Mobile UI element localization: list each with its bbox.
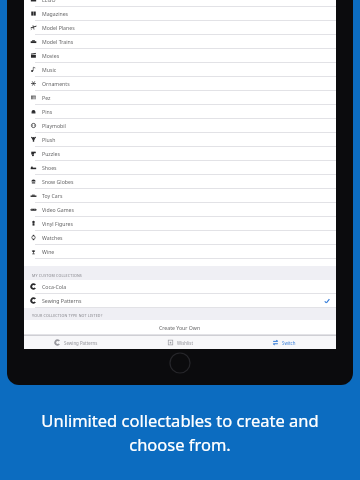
staticText: Plush: [42, 136, 56, 143]
staticText: Sewing Patterns: [42, 297, 82, 304]
staticText: Watches: [42, 234, 63, 241]
button[interactable]: Ornaments: [24, 77, 336, 91]
button[interactable]: Wishlist: [128, 336, 232, 349]
button[interactable]: Music: [24, 63, 336, 77]
staticText: Coca-Cola: [42, 283, 67, 290]
button[interactable]: Snow Globes: [24, 175, 336, 189]
button[interactable]: Toy Cars: [24, 189, 336, 203]
button[interactable]: Home: [169, 352, 191, 374]
staticText: Unlimited collectables to create and cho…: [41, 409, 319, 456]
staticText: Shoes: [42, 164, 57, 171]
staticText: Model Planes: [42, 24, 75, 31]
staticText: Video Games: [42, 206, 75, 213]
button[interactable]: Coca-Cola: [24, 280, 336, 294]
button[interactable]: Plush: [24, 133, 336, 147]
button[interactable]: Model Trains: [24, 35, 336, 49]
staticText: Wine: [42, 248, 55, 255]
staticText: Ornaments: [42, 80, 70, 87]
button[interactable]: Video Games: [24, 203, 336, 217]
button[interactable]: Playmobil: [24, 119, 336, 133]
staticText: Sewing Patterns: [64, 340, 98, 346]
staticText: LEGO: [42, 0, 56, 3]
button[interactable]: Shoes: [24, 161, 336, 175]
button[interactable]: Magazines: [24, 7, 336, 21]
staticText: Toy Cars: [42, 192, 63, 199]
staticText: Pez: [42, 94, 51, 101]
button[interactable]: Create Your Own: [24, 320, 336, 334]
button[interactable]: Pins: [24, 105, 336, 119]
staticText: Playmobil: [42, 122, 66, 129]
button[interactable]: Pez: [24, 91, 336, 105]
staticText: Magazines: [42, 10, 69, 17]
staticText: Vinyl Figures: [42, 220, 73, 227]
staticText: MY CUSTOM COLLECTIONS: [32, 273, 82, 278]
staticText: Snow Globes: [42, 178, 74, 185]
button[interactable]: Watches: [24, 231, 336, 245]
button[interactable]: LEGO: [24, 0, 336, 7]
button[interactable]: Sewing Patterns: [24, 294, 336, 308]
staticText: Model Trains: [42, 38, 74, 45]
button[interactable]: Wine: [24, 245, 336, 259]
button[interactable]: Sewing Patterns: [24, 336, 128, 349]
staticText: Pins: [42, 108, 53, 115]
staticText: YOUR COLLECTION TYPE NOT LISTED?: [32, 313, 103, 318]
button[interactable]: Movies: [24, 49, 336, 63]
staticText: Switch: [282, 340, 296, 346]
staticText: Puzzles: [42, 150, 60, 157]
staticText: Wishlist: [177, 340, 193, 346]
staticText: Music: [42, 66, 57, 73]
staticText: Create Your Own: [159, 324, 201, 331]
button[interactable]: Vinyl Figures: [24, 217, 336, 231]
staticText: Movies: [42, 52, 60, 59]
button[interactable]: Switch: [232, 336, 336, 349]
button[interactable]: Puzzles: [24, 147, 336, 161]
button[interactable]: Model Planes: [24, 21, 336, 35]
